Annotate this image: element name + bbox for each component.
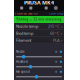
button[interactable]: Increase: [60, 51, 62, 53]
button[interactable]: Decrease: [55, 61, 57, 63]
button[interactable]: CONTROLS: [49, 12, 63, 15]
button[interactable]: Decrease: [55, 71, 57, 73]
button[interactable]: Filament: [14, 37, 64, 44]
button[interactable]: Increase: [60, 71, 62, 73]
staticText: CONTROLS: [49, 12, 63, 15]
staticText: 215 °C: [48, 24, 60, 29]
button[interactable]: Account: [54, 6, 58, 10]
staticText: PRINTER STATUS: [15, 12, 37, 15]
staticText: Nozzle: [16, 50, 25, 53]
staticText: PLA: [53, 38, 60, 43]
staticText: ›: [61, 38, 62, 43]
button[interactable]: Nozzle temp: [14, 23, 64, 30]
staticText: Filament: [16, 38, 31, 43]
staticText: ›: [61, 24, 62, 29]
staticText: ›: [61, 31, 62, 36]
staticText: Nozzle temp: [16, 24, 38, 29]
button[interactable]: Toolbar item: [45, 6, 48, 9]
button[interactable]: Bed temp: [14, 30, 64, 37]
staticText: Printing — 32 min remaining: [16, 18, 61, 21]
button[interactable]: Decrease: [55, 51, 57, 53]
staticText: 60 °C: [50, 31, 60, 36]
button[interactable]: Increase: [60, 61, 62, 63]
button[interactable]: Toolbar item: [29, 6, 32, 9]
staticText: Bed temp: [16, 31, 33, 36]
staticText: Fan speed: [16, 70, 30, 73]
staticText: PRUSA MK4: [24, 0, 54, 6]
staticText: Heatbed: [16, 60, 28, 63]
button[interactable]: PRINTER STATUS: [15, 12, 37, 15]
button[interactable]: Toolbar item: [20, 6, 23, 9]
